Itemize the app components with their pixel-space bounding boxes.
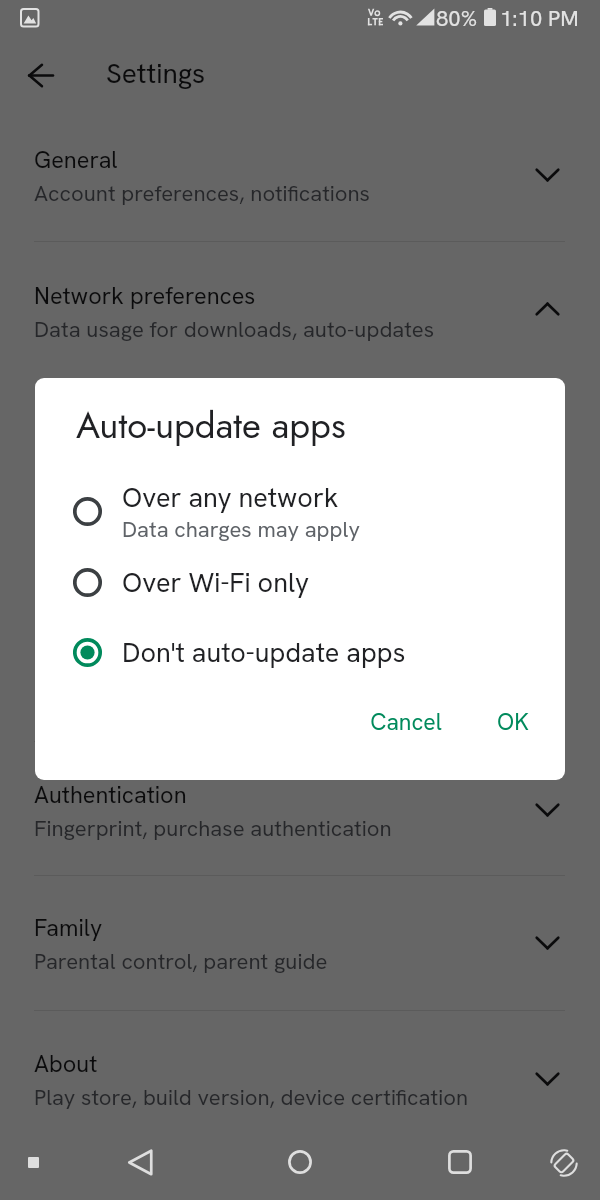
button[interactable]: General — [0, 122, 600, 234]
button[interactable]: Back — [116, 1138, 164, 1186]
staticText: General — [34, 144, 118, 175]
staticText: Over any network — [122, 480, 339, 515]
staticText: OK — [497, 707, 529, 737]
staticText: Don't auto-update apps — [122, 635, 406, 670]
staticText: Fingerprint, purchase authentication — [34, 814, 392, 843]
staticText: Over Wi-Fi only — [122, 565, 310, 600]
staticText: Parental control, parent guide — [34, 947, 328, 976]
staticText: About — [34, 1048, 98, 1079]
staticText: Cancel — [370, 707, 442, 737]
button[interactable]: Family — [0, 890, 600, 1002]
staticText: Authentication — [34, 779, 187, 810]
button[interactable]: Home — [276, 1138, 324, 1186]
button[interactable]: Menu — [17, 1146, 49, 1178]
staticText: 1:10 PM — [500, 4, 579, 33]
button[interactable] — [35, 617, 565, 687]
staticText: Auto-update apps — [76, 399, 346, 452]
staticText: Family — [34, 912, 103, 943]
staticText: 80% — [436, 4, 478, 33]
button[interactable]: Navigate up — [13, 59, 69, 115]
staticText: Play store, build version, device certif… — [34, 1083, 468, 1112]
button[interactable]: Authentication — [0, 757, 600, 869]
button[interactable]: Recent apps — [436, 1138, 484, 1186]
staticText: Data charges may apply — [122, 515, 360, 544]
button[interactable]: Cancel — [349, 698, 463, 745]
button[interactable] — [35, 547, 565, 617]
button[interactable]: Network preferences — [0, 258, 600, 370]
staticText: Settings — [106, 55, 206, 91]
button[interactable]: Rotate screen — [540, 1139, 588, 1187]
staticText: Data usage for downloads, auto-updates — [34, 315, 435, 344]
button[interactable] — [35, 476, 565, 546]
button[interactable]: OK — [478, 698, 548, 745]
staticText: Network preferences — [34, 280, 256, 311]
staticText: Account preferences, notifications — [34, 179, 371, 208]
button[interactable]: About — [0, 1026, 600, 1138]
